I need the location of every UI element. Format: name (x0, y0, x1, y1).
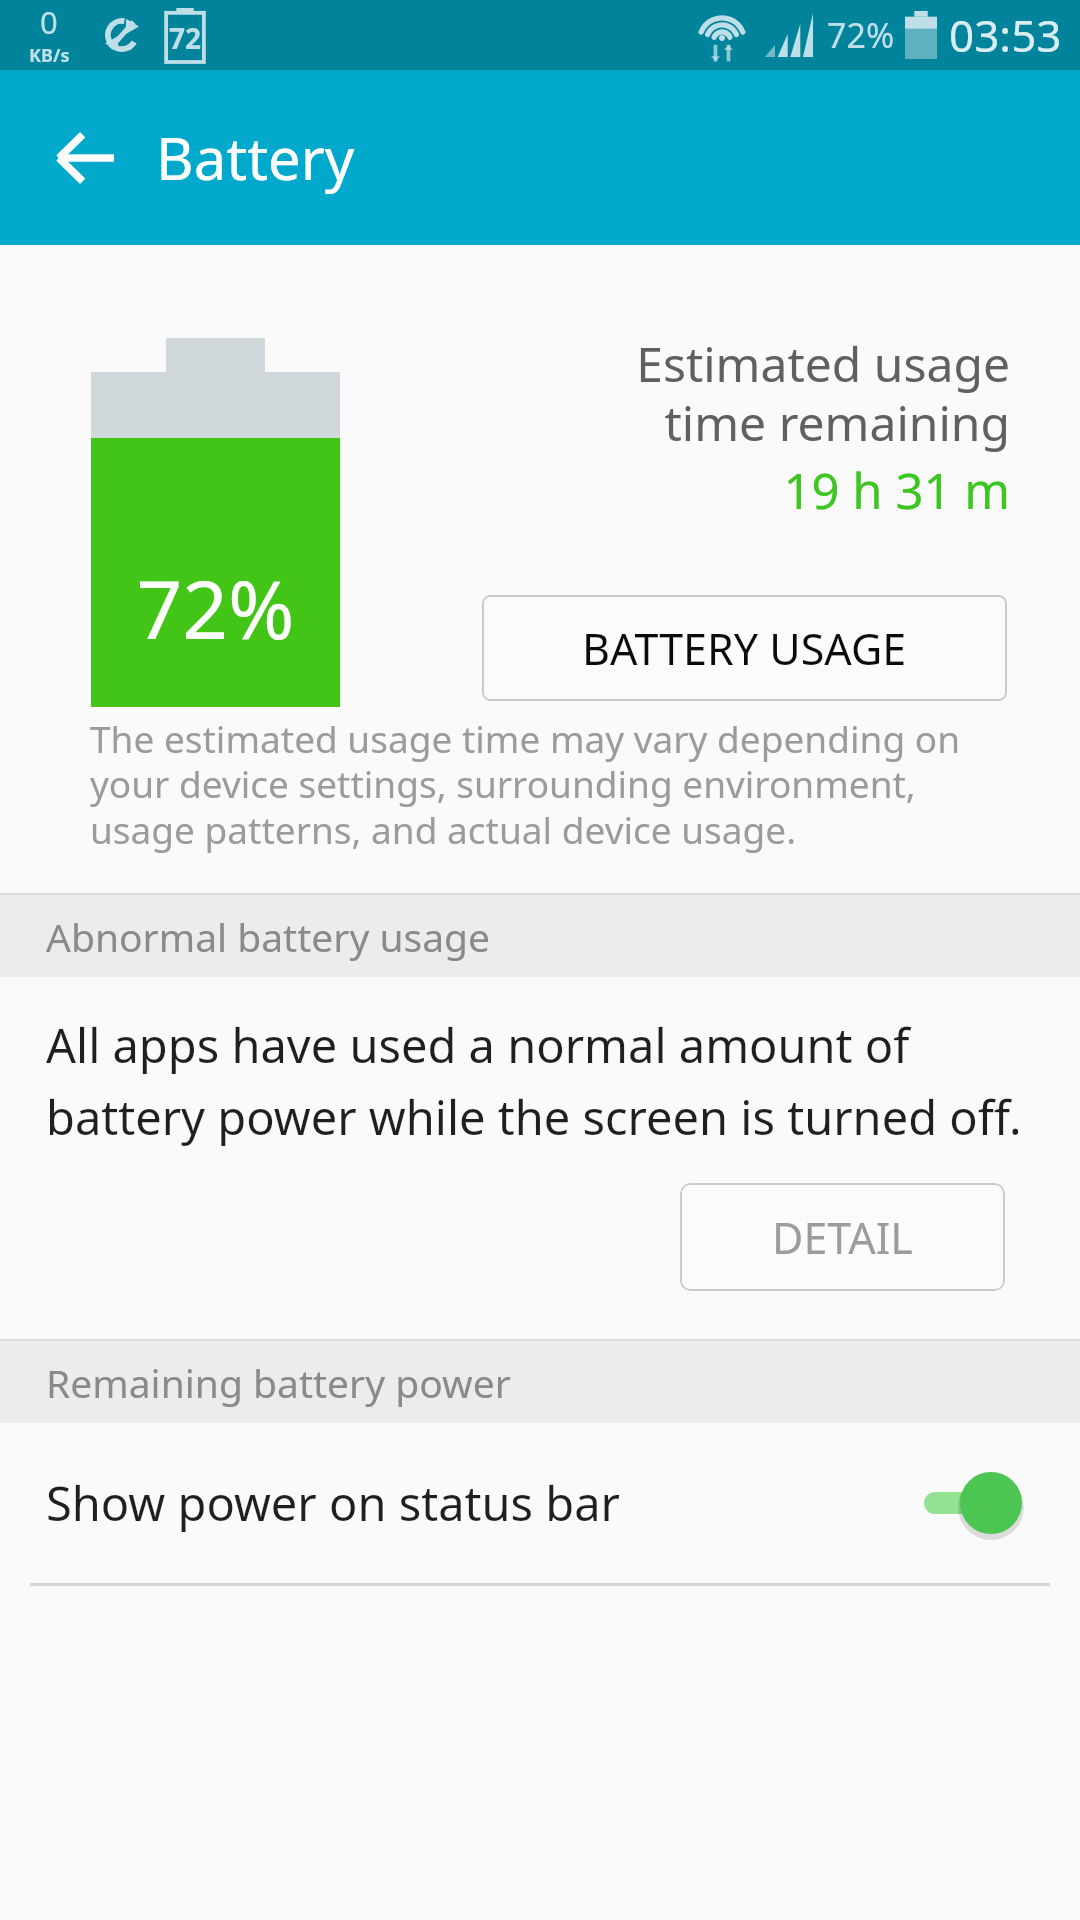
staticText: BATTERY USAGE (582, 619, 907, 678)
button[interactable]: Show power on status bar (0, 1423, 1080, 1583)
button[interactable]: DETAIL (680, 1183, 1005, 1291)
staticText: 72 (169, 19, 202, 57)
staticText: 03:53 (949, 5, 1062, 65)
other: Show power on status bar (924, 1470, 1024, 1536)
staticText: Show power on status bar (46, 1471, 924, 1535)
staticText: Battery (156, 118, 355, 197)
staticText: 19 h 31 m (530, 457, 1010, 524)
staticText: KB/s (29, 43, 70, 68)
staticText: Remaining battery power (46, 1356, 511, 1409)
staticText: 0 (40, 1, 58, 43)
staticText: Estimated usage time remaining (530, 331, 1010, 455)
button[interactable]: Back (22, 95, 148, 221)
staticText: DETAIL (772, 1208, 913, 1267)
staticText: 72% (827, 12, 895, 58)
staticText: Abnormal battery usage (46, 910, 491, 963)
staticText: All apps have used a normal amount of ba… (46, 1013, 1051, 1148)
staticText: The estimated usage time may vary depend… (90, 713, 1020, 855)
staticText: 72% (95, 553, 336, 662)
button[interactable]: BATTERY USAGE (482, 595, 1007, 701)
